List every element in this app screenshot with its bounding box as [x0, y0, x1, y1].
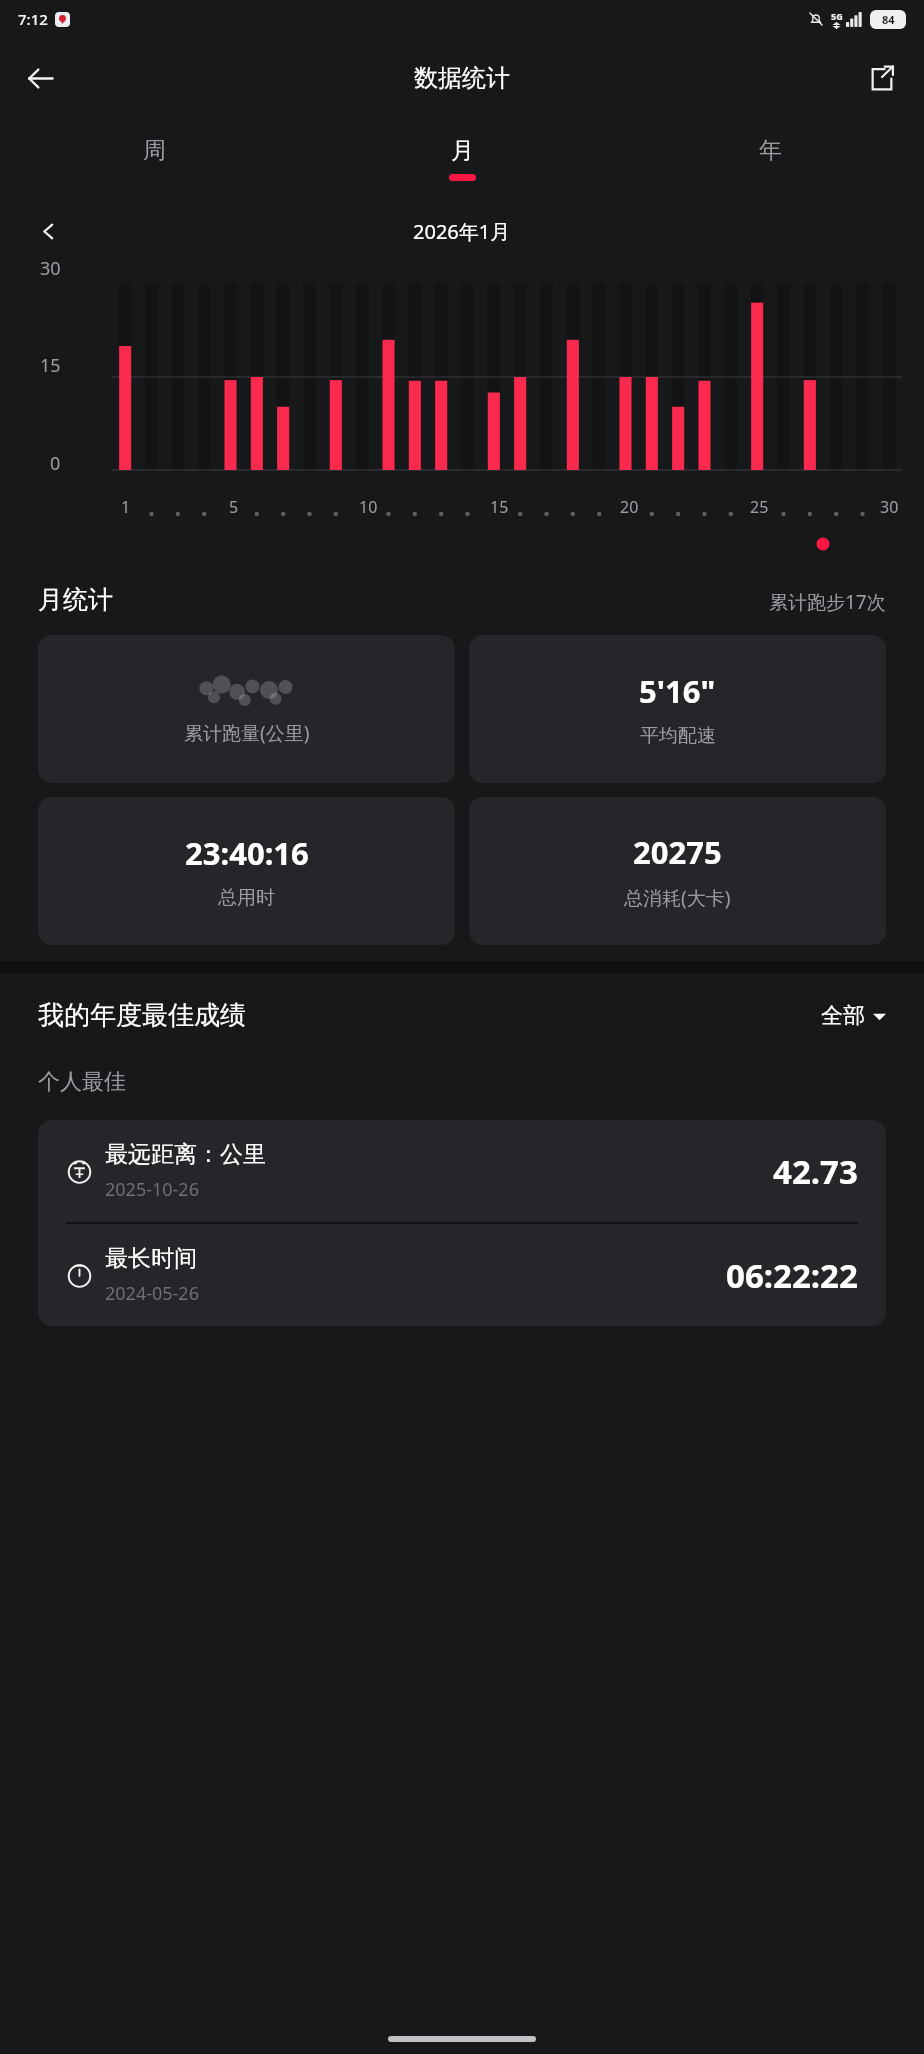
staticText: 月统计	[38, 584, 113, 615]
staticText: 42.73	[773, 1149, 858, 1194]
staticText: 月	[451, 136, 474, 165]
staticText: 周	[143, 136, 166, 165]
button[interactable]: 全部	[821, 1002, 886, 1030]
button[interactable]: Share	[854, 50, 910, 106]
staticText: 23:40:16	[185, 832, 309, 874]
staticText: 20275	[633, 831, 722, 873]
staticText: 15	[490, 496, 509, 518]
staticText: 30	[40, 256, 61, 281]
staticText: 累计跑步17次	[769, 589, 886, 615]
staticText: 2024-05-26	[105, 1281, 199, 1306]
staticText: 最长时间	[105, 1244, 197, 1273]
staticText: 2026年1月	[413, 218, 511, 245]
staticText: 20	[620, 496, 639, 518]
staticText: 累计跑量(公里)	[184, 720, 310, 746]
staticText: 总用时	[218, 886, 275, 910]
staticText: 25	[750, 496, 769, 518]
button[interactable]: 累计跑量(公里)	[38, 635, 455, 783]
staticText: 30	[880, 496, 899, 518]
button[interactable]: 5'16"	[469, 635, 886, 783]
staticText: 总消耗(大卡)	[624, 885, 731, 911]
button[interactable]: 最长时间	[38, 1224, 886, 1326]
button[interactable]: Back	[12, 50, 68, 106]
staticText: 全部	[821, 1002, 865, 1030]
staticText: 5'16"	[639, 670, 716, 712]
staticText: 1	[121, 496, 131, 518]
button[interactable]: 最远距离：公里	[38, 1120, 886, 1222]
staticText: 个人最佳	[38, 1068, 126, 1096]
staticText: 最远距离：公里	[105, 1140, 266, 1169]
staticText: 15	[40, 353, 61, 378]
button[interactable]: 年	[616, 118, 924, 200]
button[interactable]: 月	[308, 118, 616, 200]
staticText: 7:12	[18, 9, 48, 29]
button[interactable]: 周	[0, 118, 308, 200]
button[interactable]: 20275	[469, 797, 886, 945]
button[interactable]: 23:40:16	[38, 797, 455, 945]
staticText: 我的年度最佳成绩	[38, 999, 246, 1032]
staticText: 84	[882, 12, 895, 27]
staticText: 数据统计	[414, 63, 510, 93]
staticText: 5	[229, 496, 239, 518]
staticText: 5G	[831, 10, 843, 22]
staticText: 06:22:22	[726, 1253, 858, 1298]
staticText: 0	[50, 451, 61, 476]
staticText: 10	[359, 496, 378, 518]
button[interactable]: Previous month	[26, 209, 70, 253]
staticText: 平均配速	[640, 724, 716, 748]
staticText: 2025-10-26	[105, 1177, 199, 1202]
staticText: 年	[759, 136, 782, 165]
